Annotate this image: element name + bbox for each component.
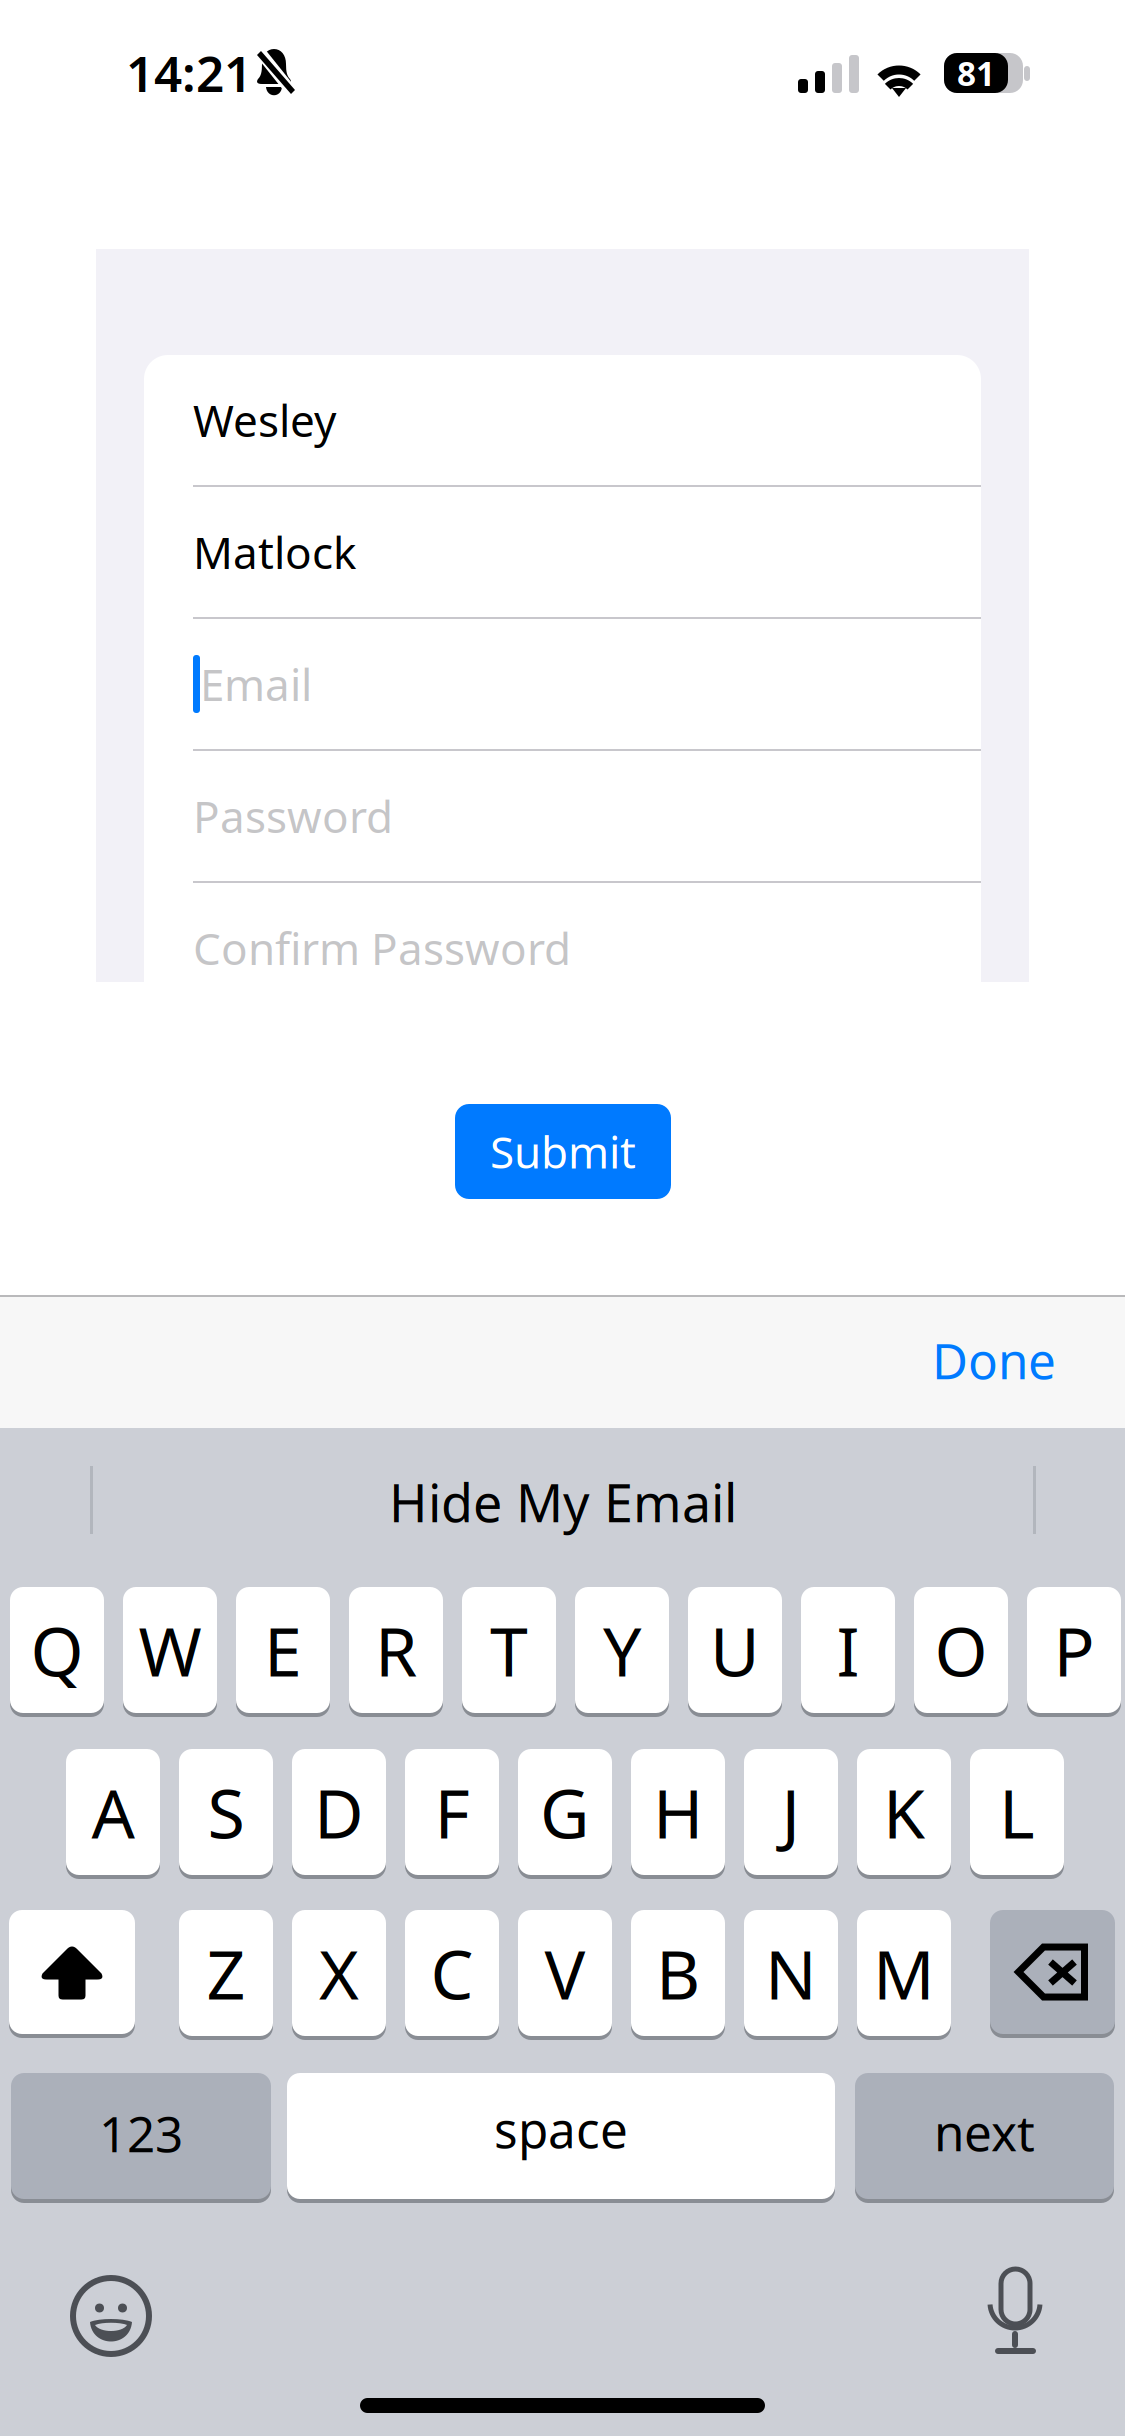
button[interactable]: Q (10, 1587, 104, 1717)
button[interactable]: X (292, 1910, 386, 2040)
staticText: Confirm Password (193, 919, 571, 977)
button[interactable]: Hide My Email (93, 1454, 1033, 1550)
staticText: K (883, 1767, 925, 1857)
staticText: S (207, 1767, 244, 1857)
staticText: L (999, 1767, 1035, 1857)
staticText: V (544, 1928, 585, 2018)
staticText: Hide My Email (389, 1467, 737, 1537)
button[interactable]: Password (144, 751, 981, 881)
staticText: space (494, 2096, 628, 2162)
button[interactable]: C (405, 1910, 499, 2040)
staticText: E (264, 1605, 302, 1695)
button[interactable]: Emoji (73, 2278, 149, 2354)
button[interactable]: E (236, 1587, 330, 1717)
staticText: P (1053, 1605, 1094, 1695)
button[interactable]: Wesley (144, 355, 981, 485)
staticText: B (656, 1928, 700, 2018)
staticText: Done (932, 1327, 1056, 1393)
staticText: W (138, 1605, 201, 1695)
staticText: Password (193, 787, 393, 845)
button[interactable]: R (349, 1587, 443, 1717)
staticText: M (873, 1928, 935, 2018)
button[interactable]: Email (144, 619, 981, 749)
staticText: next (934, 2099, 1035, 2165)
staticText: H (653, 1767, 703, 1857)
button[interactable]: Confirm Password (144, 883, 981, 1013)
staticText: I (836, 1605, 859, 1695)
staticText: U (710, 1605, 760, 1695)
button[interactable]: N (744, 1910, 838, 2040)
staticText: O (934, 1605, 987, 1695)
button[interactable]: K (857, 1749, 951, 1879)
button[interactable]: H (631, 1749, 725, 1879)
button[interactable]: S (179, 1749, 273, 1879)
staticText: Matlock (193, 523, 356, 581)
button[interactable]: G (518, 1749, 612, 1879)
staticText: Y (603, 1605, 641, 1695)
staticText: R (375, 1605, 417, 1695)
button[interactable]: F (405, 1749, 499, 1879)
button[interactable]: J (744, 1749, 838, 1879)
staticText: A (91, 1767, 134, 1857)
button[interactable]: U (688, 1587, 782, 1717)
staticText: D (314, 1767, 364, 1857)
button[interactable]: O (914, 1587, 1008, 1717)
staticText: 14:21 (126, 40, 252, 105)
button[interactable]: M (857, 1910, 951, 2040)
button[interactable]: Delete (990, 1910, 1115, 2038)
staticText: G (540, 1767, 590, 1857)
button[interactable]: next (855, 2073, 1114, 2203)
button[interactable]: P (1027, 1587, 1121, 1717)
button[interactable]: Shift (9, 1910, 135, 2038)
button[interactable]: Submit (455, 1104, 671, 1199)
staticText: X (319, 1928, 359, 2018)
button[interactable]: L (970, 1749, 1064, 1879)
staticText: C (430, 1928, 473, 2018)
button[interactable]: T (462, 1587, 556, 1717)
staticText: Z (206, 1928, 245, 2018)
button[interactable]: Matlock (144, 487, 981, 617)
staticText: 123 (99, 2100, 183, 2166)
staticText: T (490, 1605, 528, 1695)
staticText: F (434, 1767, 469, 1857)
button[interactable]: I (801, 1587, 895, 1717)
staticText: 81 (957, 51, 995, 95)
button[interactable]: D (292, 1749, 386, 1879)
button[interactable]: Done (906, 1324, 1082, 1396)
button[interactable]: Y (575, 1587, 669, 1717)
staticText: Submit (490, 1122, 636, 1181)
button[interactable]: V (518, 1910, 612, 2040)
button[interactable]: B (631, 1910, 725, 2040)
staticText: J (781, 1767, 800, 1857)
button[interactable]: 123 (11, 2073, 271, 2203)
button[interactable]: Dictate (987, 2269, 1043, 2357)
button[interactable]: space (287, 2073, 835, 2203)
staticText: N (765, 1928, 817, 2018)
staticText: Email (200, 655, 312, 713)
staticText: Q (30, 1605, 83, 1695)
button[interactable]: W (123, 1587, 217, 1717)
button[interactable]: Z (179, 1910, 273, 2040)
button[interactable]: A (66, 1749, 160, 1879)
staticText: Wesley (193, 391, 336, 449)
